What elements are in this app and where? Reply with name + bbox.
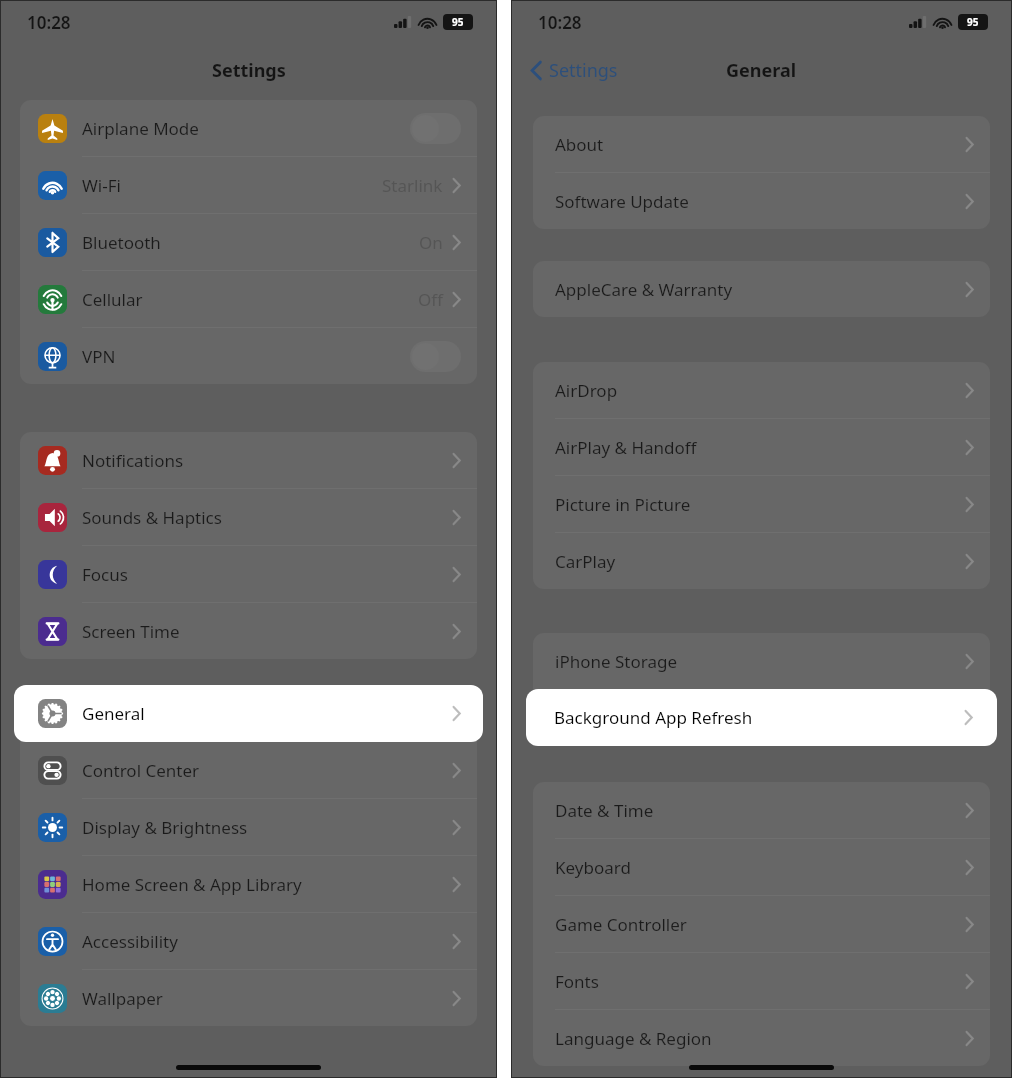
staticText: About — [555, 133, 604, 156]
staticText: Settings — [212, 58, 286, 83]
staticText: Notifications — [82, 449, 184, 472]
staticText: Focus — [82, 563, 128, 586]
button[interactable]: Display & Brightness — [20, 799, 477, 855]
button[interactable]: Picture in Picture — [533, 476, 990, 532]
staticText: Control Center — [82, 759, 200, 782]
staticText: Accessibility — [82, 930, 178, 953]
button[interactable]: Date & Time — [533, 782, 990, 838]
staticText: Home Screen & App Library — [82, 873, 302, 896]
button[interactable]: Sounds & Haptics — [20, 489, 477, 545]
staticText: Starlink — [382, 174, 443, 197]
button[interactable]: AirDrop — [533, 362, 990, 418]
staticText: Settings — [549, 58, 618, 83]
staticText: General — [726, 58, 797, 83]
button[interactable]: Wi-Fi — [20, 157, 477, 213]
button[interactable]: Background App Refresh — [526, 689, 997, 746]
button[interactable]: AppleCare & Warranty — [533, 261, 990, 317]
staticText: General — [82, 702, 145, 725]
button[interactable]: Notifications — [20, 432, 477, 488]
staticText: Keyboard — [555, 856, 631, 879]
button[interactable]: VPN toggle — [410, 341, 461, 372]
button[interactable]: VPN — [20, 328, 477, 384]
staticText: Wallpaper — [82, 987, 163, 1010]
staticText: Screen Time — [82, 620, 180, 643]
staticText: 95 — [452, 15, 464, 29]
staticText: AirPlay & Handoff — [555, 436, 697, 459]
button[interactable]: Focus — [20, 546, 477, 602]
button[interactable]: Control Center — [20, 742, 477, 798]
staticText: Sounds & Haptics — [82, 506, 222, 529]
button[interactable]: Software Update — [533, 173, 990, 229]
button[interactable]: Bluetooth — [20, 214, 477, 270]
staticText: 10:28 — [27, 11, 71, 34]
button[interactable]: Settings — [527, 52, 622, 89]
staticText: AirDrop — [555, 379, 618, 402]
staticText: iPhone Storage — [555, 650, 677, 673]
button[interactable]: Wallpaper — [20, 970, 477, 1026]
staticText: Airplane Mode — [82, 117, 199, 140]
staticText: Cellular — [82, 288, 143, 311]
button[interactable]: Language & Region — [533, 1010, 990, 1066]
button[interactable]: Fonts — [533, 953, 990, 1009]
staticText: Software Update — [555, 190, 689, 213]
button[interactable]: About — [533, 116, 990, 172]
staticText: Picture in Picture — [555, 493, 691, 516]
staticText: Display & Brightness — [82, 816, 248, 839]
staticText: Bluetooth — [82, 231, 161, 254]
button[interactable]: General — [14, 685, 483, 742]
staticText: Off — [418, 288, 443, 311]
staticText: 10:28 — [538, 11, 582, 34]
staticText: Wi-Fi — [82, 174, 121, 197]
button[interactable]: Airplane Mode toggle — [410, 113, 461, 144]
staticText: CarPlay — [555, 550, 616, 573]
button[interactable]: Airplane Mode — [20, 100, 477, 156]
button[interactable]: Home Screen & App Library — [20, 856, 477, 912]
staticText: VPN — [82, 345, 116, 368]
staticText: Fonts — [555, 970, 599, 993]
staticText: AppleCare & Warranty — [555, 278, 733, 301]
button[interactable]: Keyboard — [533, 839, 990, 895]
staticText: Language & Region — [555, 1027, 712, 1050]
button[interactable]: Game Controller — [533, 896, 990, 952]
button[interactable]: Screen Time — [20, 603, 477, 659]
staticText: Background App Refresh — [554, 706, 753, 729]
button[interactable]: Cellular — [20, 271, 477, 327]
staticText: On — [419, 231, 443, 254]
button[interactable]: iPhone Storage — [533, 633, 990, 689]
staticText: Date & Time — [555, 799, 654, 822]
staticText: 95 — [967, 15, 979, 29]
button[interactable]: AirPlay & Handoff — [533, 419, 990, 475]
staticText: Game Controller — [555, 913, 687, 936]
button[interactable]: CarPlay — [533, 533, 990, 589]
button[interactable]: Accessibility — [20, 913, 477, 969]
